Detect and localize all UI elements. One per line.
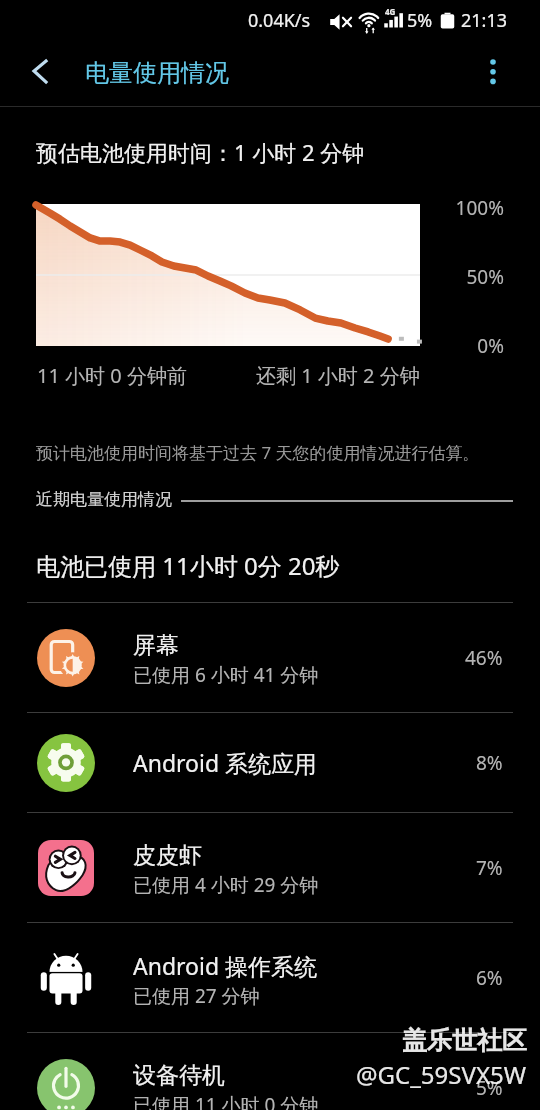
staticText: 已使用 6 小时 41 分钟	[133, 662, 319, 688]
staticText: 盖乐世社区	[402, 1025, 527, 1056]
staticText: 0%	[400, 333, 504, 359]
staticText: Android 系统应用	[133, 747, 318, 778]
button[interactable]: Android 操作系统	[0, 923, 540, 1032]
staticText: 7%	[476, 855, 503, 881]
staticText: 0.04K/s	[248, 8, 311, 33]
staticText: 21:13	[461, 8, 508, 33]
staticText: 预计电池使用时间将基于过去 7 天您的使用情况进行估算。	[36, 441, 480, 464]
staticText: 近期电量使用情况	[36, 489, 172, 510]
staticText: @GC_59SVX5W	[356, 1058, 527, 1091]
staticText: 预估电池使用时间：1 小时 2 分钟	[36, 137, 365, 167]
staticText: 已使用 27 分钟	[133, 983, 260, 1009]
button[interactable]: More options	[471, 48, 517, 94]
staticText: 屏幕	[133, 631, 179, 660]
staticText: 已使用 4 小时 29 分钟	[133, 872, 319, 898]
button[interactable]: 皮皮虾	[0, 813, 540, 922]
button[interactable]: Back	[18, 48, 64, 94]
staticText: 电量使用情况	[85, 58, 229, 88]
staticText: 已使用 11 小时 0 分钟	[133, 1092, 319, 1110]
staticText: 电池已使用 11小时 0分 20秒	[36, 549, 340, 582]
staticText: 46%	[465, 645, 503, 671]
staticText: Android 操作系统	[133, 950, 318, 981]
button[interactable]: 屏幕	[0, 603, 540, 712]
staticText: 100%	[400, 195, 504, 221]
staticText: 5%	[476, 1075, 503, 1101]
staticText: 还剩 1 小时 2 分钟	[256, 362, 420, 389]
staticText: 6%	[476, 965, 503, 991]
staticText: 5%	[407, 8, 433, 33]
button[interactable]: 设备待机	[0, 1033, 540, 1110]
staticText: 11 小时 0 分钟前	[37, 362, 187, 389]
staticText: 8%	[476, 750, 503, 776]
staticText: 皮皮虾	[133, 841, 202, 870]
staticText: 50%	[400, 264, 504, 290]
staticText: 4G	[385, 6, 396, 17]
staticText: 设备待机	[133, 1061, 225, 1090]
button[interactable]: Android 系统应用	[0, 713, 540, 812]
